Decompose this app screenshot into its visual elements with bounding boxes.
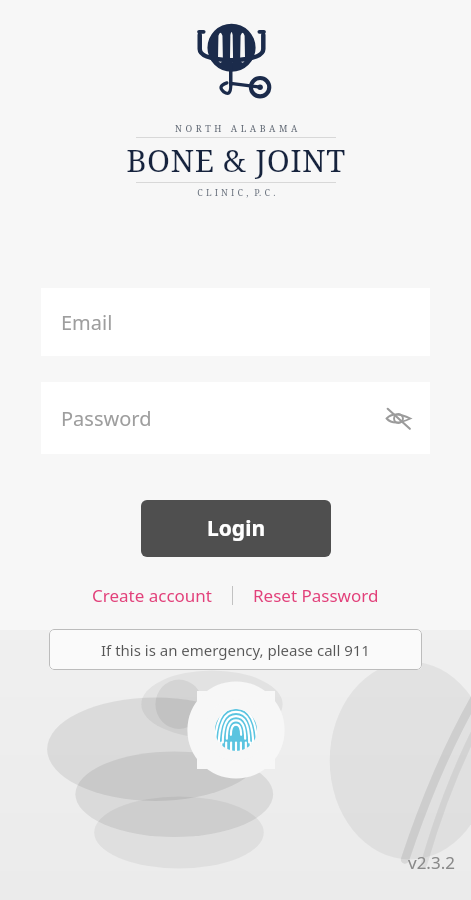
staticText: Email xyxy=(61,309,113,336)
staticText: BONE & JOINT xyxy=(126,139,346,181)
button[interactable]: Sign in with fingerprint xyxy=(204,698,268,762)
staticText: Reset Password xyxy=(253,584,379,607)
button[interactable]: If this is an emergency, please call 911 xyxy=(49,629,422,670)
button[interactable]: Email xyxy=(41,288,430,356)
staticText: Login xyxy=(207,514,266,543)
button[interactable]: Reset Password xyxy=(247,579,385,612)
staticText: v2.3.2 xyxy=(408,851,455,874)
staticText: If this is an emergency, please call 911 xyxy=(101,640,370,660)
button[interactable]: Password xyxy=(41,382,430,454)
staticText: N O R T H A L A B A M A xyxy=(175,122,298,134)
staticText: Create account xyxy=(92,584,212,607)
staticText: C L I N I C , P. C . xyxy=(197,186,276,198)
button[interactable]: Show password xyxy=(380,400,416,436)
button[interactable]: Login xyxy=(141,500,331,557)
button[interactable]: Create account xyxy=(86,579,218,612)
staticText: Password xyxy=(61,405,152,432)
